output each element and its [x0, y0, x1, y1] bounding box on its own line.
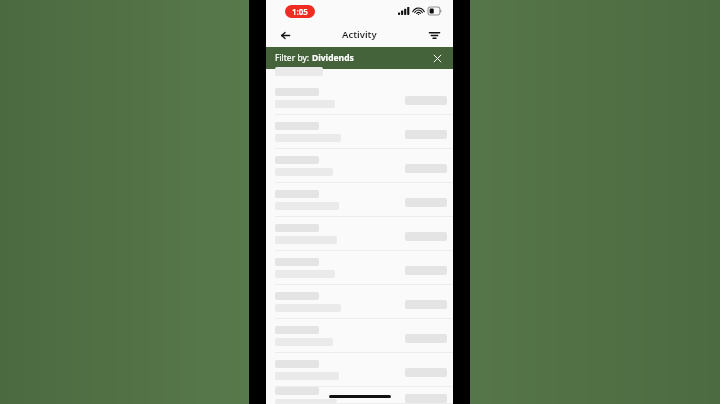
button[interactable] — [266, 319, 453, 353]
staticText: Filter by: — [275, 52, 312, 64]
button[interactable]: Clear filter — [428, 49, 446, 67]
staticText: Activity — [342, 28, 377, 41]
button[interactable] — [266, 81, 453, 115]
button[interactable] — [266, 387, 453, 404]
staticText: 1:05 — [292, 6, 308, 17]
staticText: Dividends — [312, 52, 354, 64]
button[interactable] — [266, 69, 453, 81]
button[interactable] — [266, 149, 453, 183]
button[interactable] — [266, 251, 453, 285]
button[interactable]: Back — [274, 24, 296, 46]
button[interactable] — [266, 217, 453, 251]
button[interactable] — [266, 183, 453, 217]
button[interactable] — [266, 115, 453, 149]
button[interactable] — [266, 353, 453, 387]
button[interactable] — [266, 285, 453, 319]
button[interactable]: Filter — [423, 24, 445, 46]
button[interactable]: Filter by: — [266, 47, 453, 69]
